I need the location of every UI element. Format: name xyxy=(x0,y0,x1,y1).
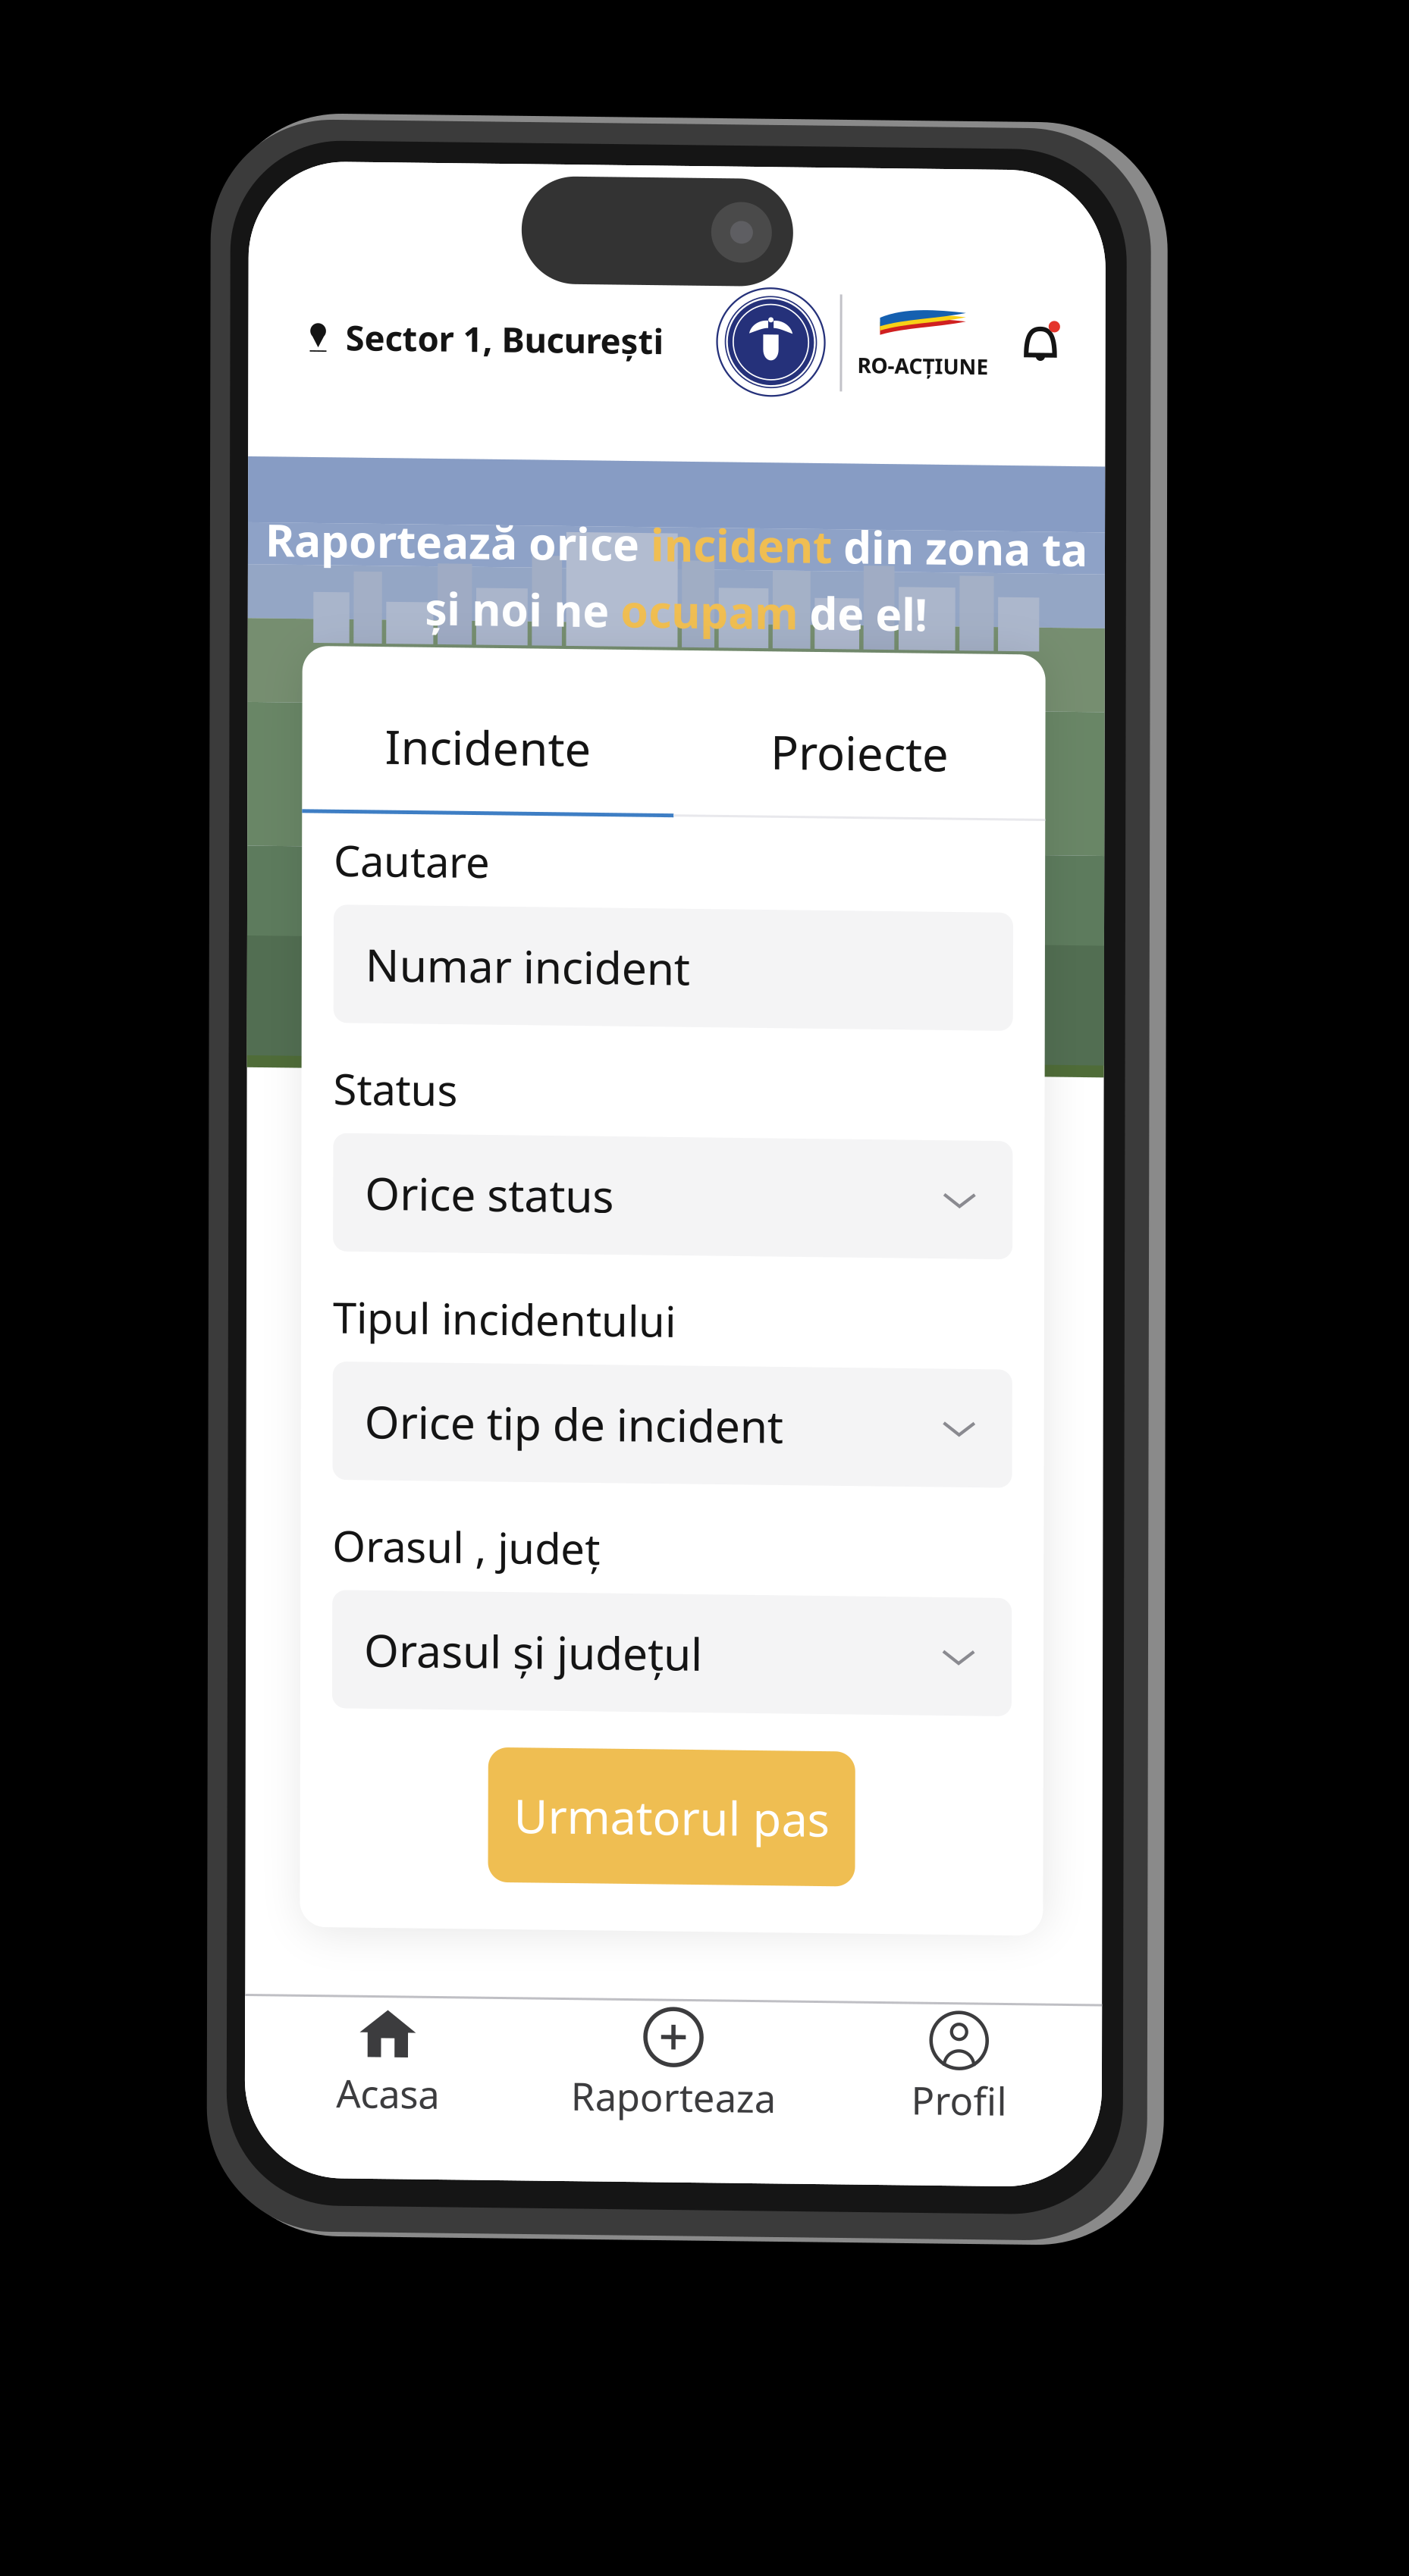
button[interactable]: Sector 1, București xyxy=(302,313,664,359)
button[interactable]: Proiecte xyxy=(675,646,1047,811)
button[interactable]: Urmatorul pas xyxy=(491,1744,858,1879)
button[interactable]: Acasa xyxy=(249,1996,534,2125)
button[interactable]: Orasul și județul xyxy=(335,1589,1015,1707)
staticText: Orice tip de incident xyxy=(367,1390,786,1449)
staticText: Orasul , județ xyxy=(335,1516,603,1572)
staticText: incident xyxy=(651,510,833,569)
button[interactable]: Orice status xyxy=(335,1132,1015,1250)
staticText: Urmatorul pas xyxy=(517,1781,833,1843)
button[interactable]: Numar incident xyxy=(335,903,1015,1022)
button[interactable]: Notificări xyxy=(1016,309,1071,363)
staticText: Raportează orice xyxy=(266,510,651,569)
staticText: ocupam xyxy=(621,576,799,635)
staticText: Tipul incidentului xyxy=(335,1287,678,1344)
staticText: din zona ta xyxy=(833,510,1088,569)
staticText: Raporteaza xyxy=(575,2066,780,2117)
staticText: RO-ACȚIUNE xyxy=(858,343,989,372)
staticText: Incidente xyxy=(386,713,592,775)
staticText: Status xyxy=(335,1059,460,1115)
button[interactable]: Orice tip de incident xyxy=(335,1360,1015,1479)
button[interactable]: Incidente xyxy=(303,645,675,812)
staticText: Acasa xyxy=(340,2066,443,2117)
staticText: Numar incident xyxy=(367,933,692,992)
staticText: Proiecte xyxy=(772,714,950,776)
staticText: de el! xyxy=(799,576,929,635)
button[interactable]: Profil xyxy=(820,1996,1106,2125)
staticText: Cautare xyxy=(335,830,491,887)
staticText: Sector 1, București xyxy=(346,313,664,359)
staticText: Profil xyxy=(915,2066,1011,2117)
staticText: Orasul și județul xyxy=(367,1619,705,1678)
button[interactable]: Raporteaza xyxy=(534,1996,820,2125)
staticText: și noi ne xyxy=(426,576,621,635)
staticText: Orice status xyxy=(367,1162,616,1221)
